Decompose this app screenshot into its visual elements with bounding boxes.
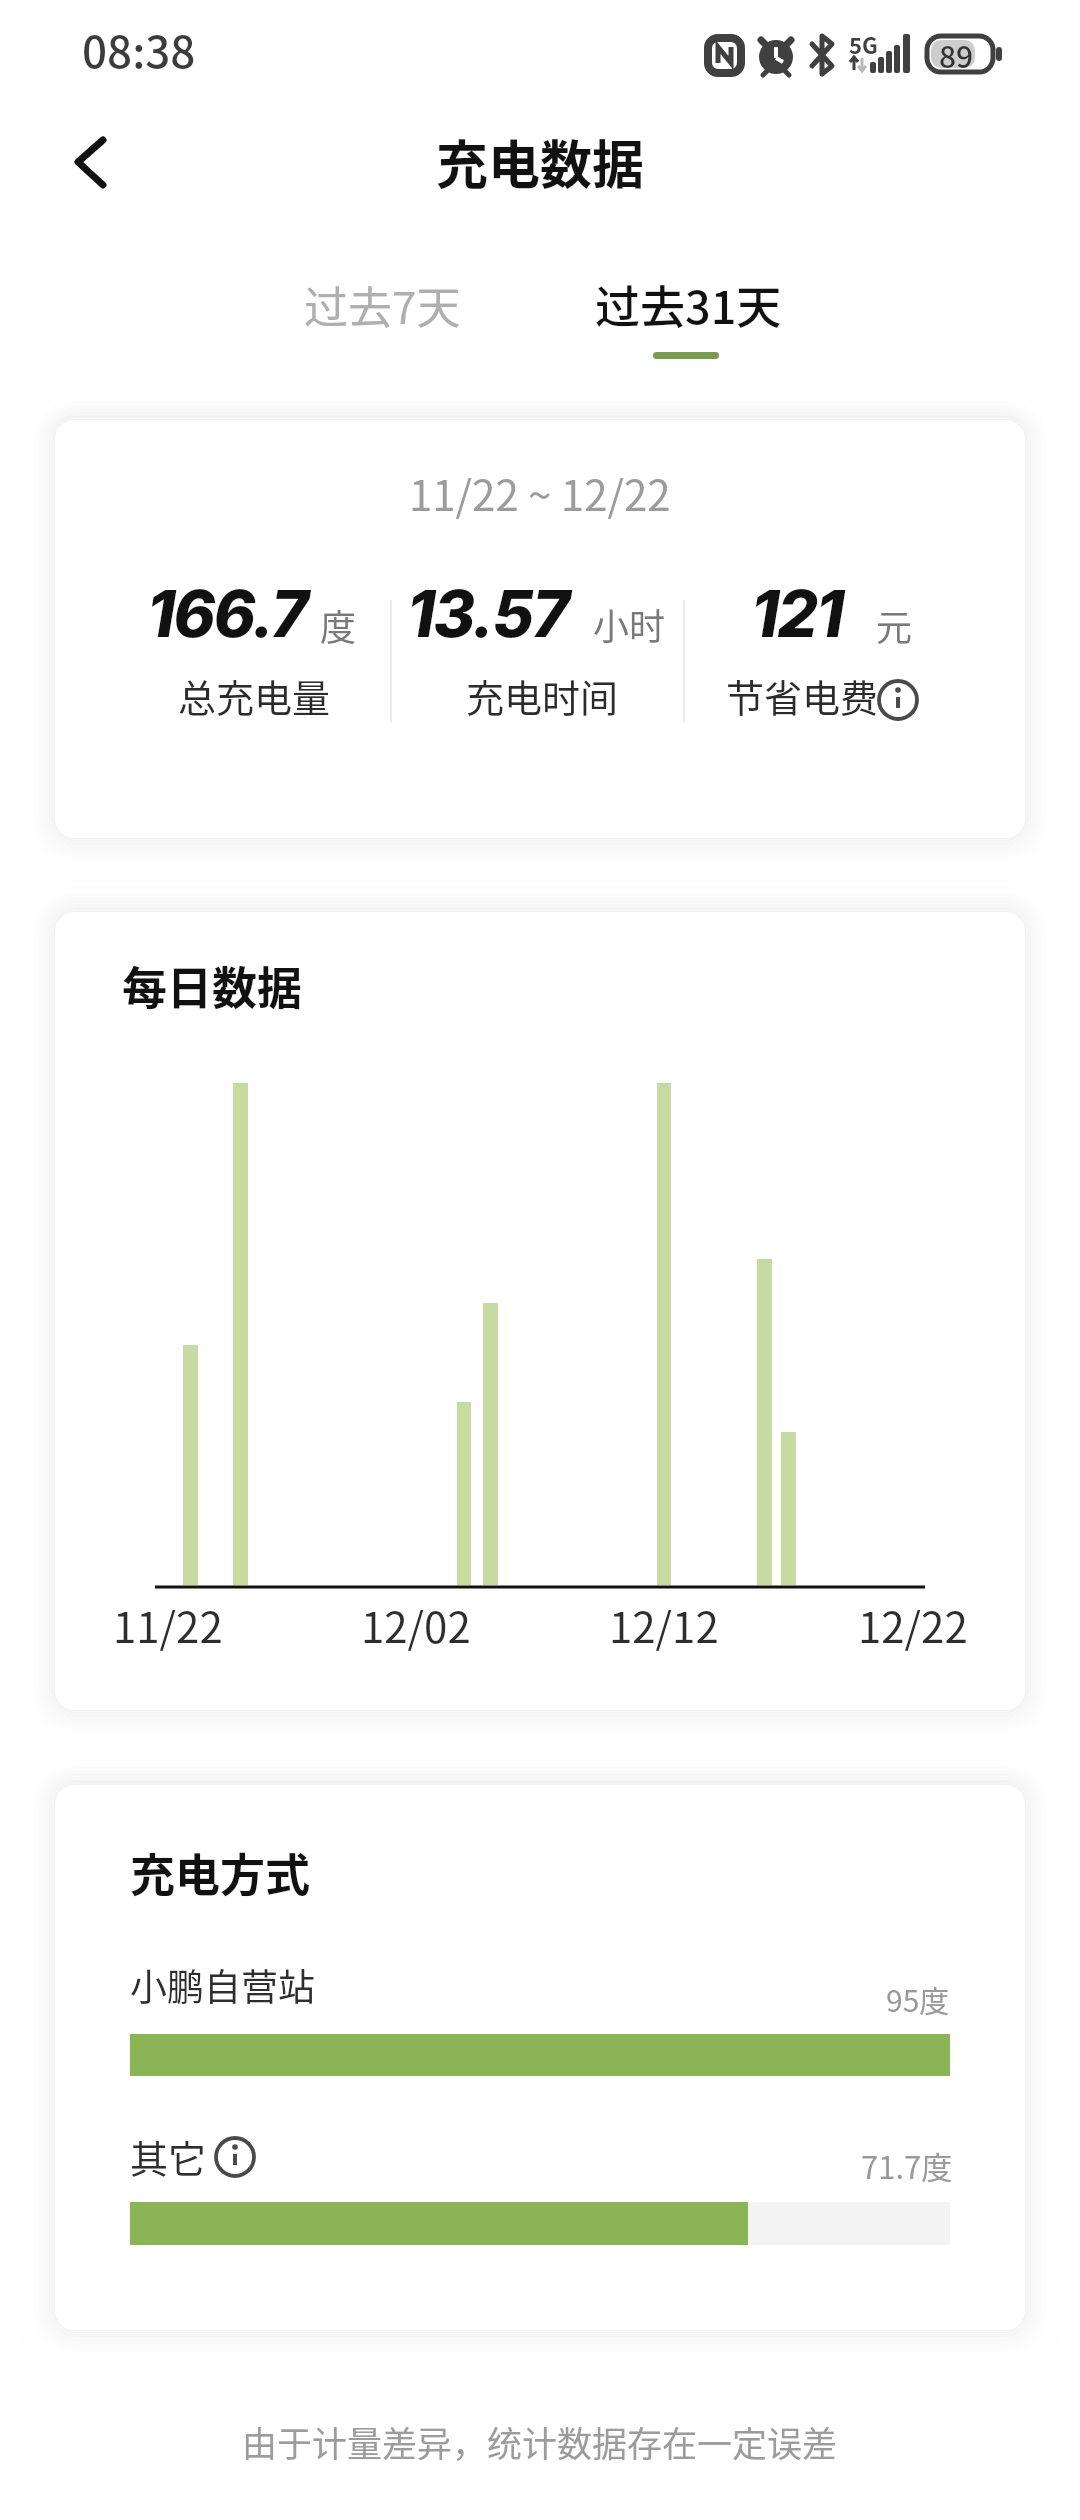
staticText: 过去31天: [595, 272, 782, 337]
staticText: 小鹏自营站: [130, 1958, 315, 2012]
staticText: 13.57: [407, 575, 568, 652]
staticText: 充电时间: [466, 668, 619, 723]
staticText: 89: [939, 33, 974, 76]
staticText: 度: [320, 599, 357, 651]
staticText: 08:38: [82, 17, 196, 81]
staticText: 166.7: [147, 575, 307, 652]
staticText: 12/22: [858, 1594, 968, 1655]
staticText: 71.7度: [861, 2143, 953, 2188]
staticText: 元: [876, 599, 913, 651]
button[interactable]: [60, 125, 132, 197]
staticText: 其它: [130, 2129, 207, 2184]
staticText: 过去7天: [304, 273, 461, 337]
staticText: 95度: [886, 1977, 950, 2020]
button[interactable]: 过去7天: [2, 235, 762, 375]
staticText: 12/02: [361, 1594, 471, 1655]
staticText: 12/12: [609, 1594, 719, 1655]
staticText: 11/22 ~ 12/22: [409, 462, 671, 523]
staticText: 每日数据: [122, 953, 303, 1018]
staticText: 充电数据: [436, 124, 645, 199]
staticText: 121: [751, 575, 843, 652]
staticText: 11/22: [113, 1594, 223, 1655]
staticText: 总充电量: [178, 668, 331, 723]
staticText: 小时: [593, 598, 666, 650]
staticText: 节省电费: [726, 668, 879, 723]
staticText: 由于计量差异，统计数据存在一定误差: [242, 2416, 838, 2467]
staticText: 充电方式: [130, 1840, 311, 1905]
button[interactable]: 过去31天: [308, 234, 1068, 374]
staticText: 5G: [849, 28, 878, 60]
